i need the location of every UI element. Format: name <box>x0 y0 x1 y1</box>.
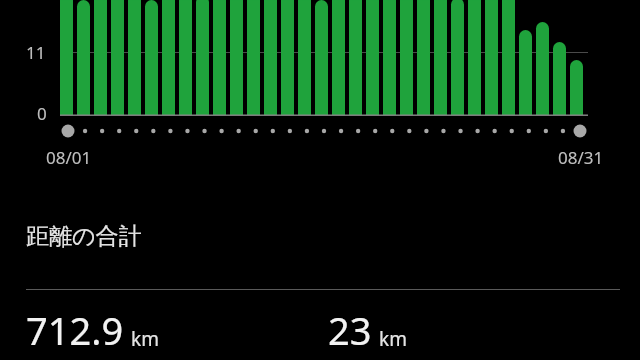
staticText: 712.9 <box>26 304 124 356</box>
staticText: km <box>379 326 407 352</box>
staticText: km <box>131 326 159 352</box>
staticText: 11 <box>26 41 46 64</box>
staticText: 0 <box>37 102 47 125</box>
staticText: 距離の合計 <box>26 222 142 251</box>
staticText: 08/31 <box>558 146 604 169</box>
button[interactable]: 712.9 <box>26 289 328 356</box>
staticText: 23 <box>328 304 372 356</box>
button[interactable]: 23 <box>328 289 620 356</box>
staticText: 08/01 <box>46 146 92 169</box>
button[interactable]: Monthly distance bar chart <box>0 0 640 175</box>
